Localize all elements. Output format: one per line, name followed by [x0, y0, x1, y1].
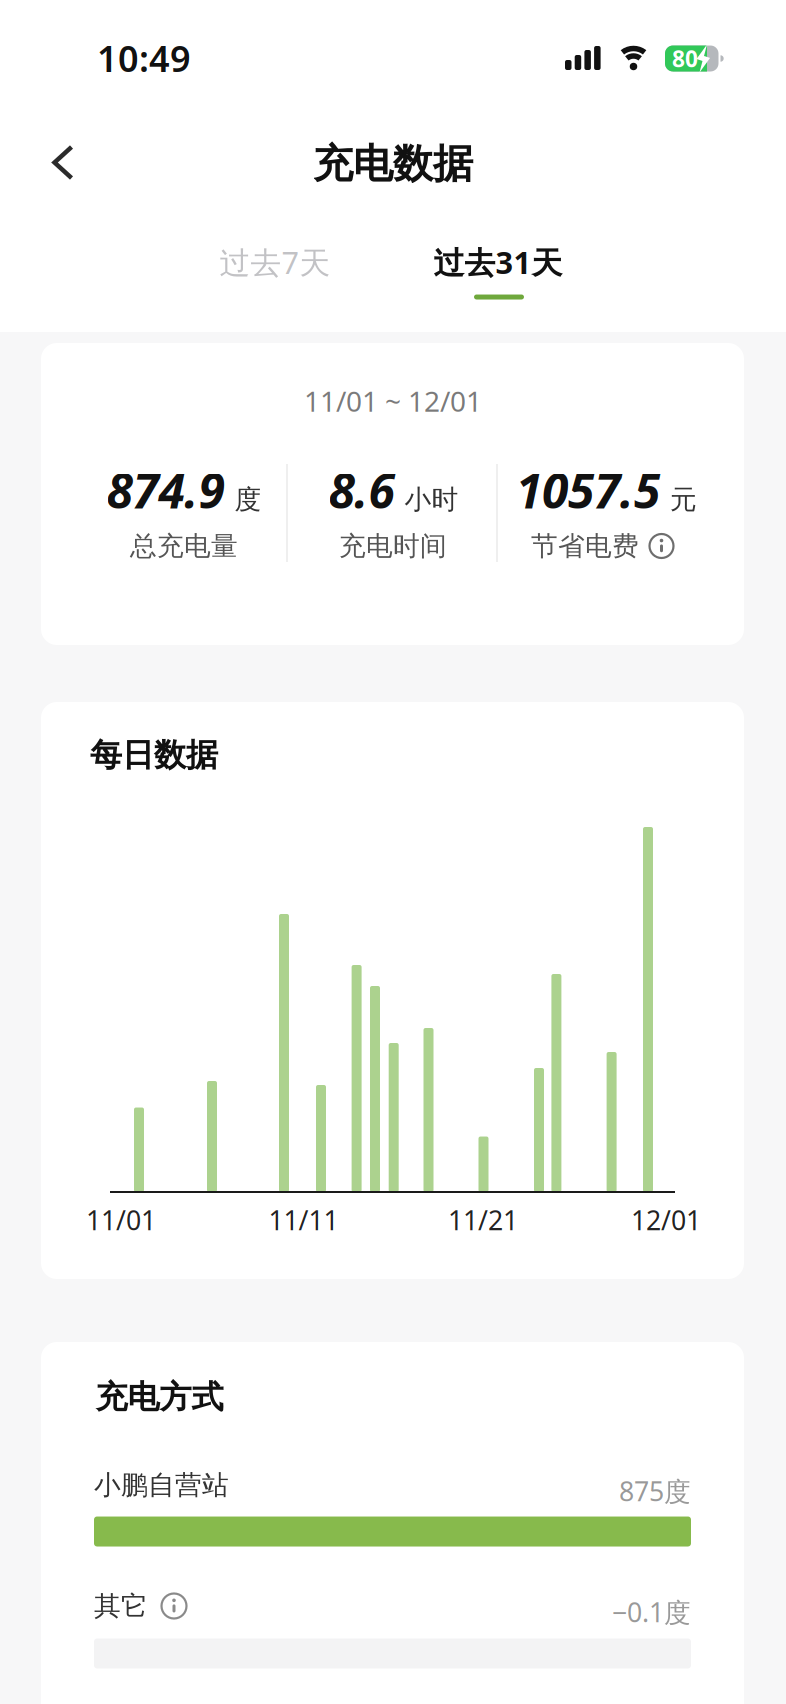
staticText: 11/11: [268, 1202, 338, 1238]
staticText: 1057.5: [516, 458, 660, 522]
button[interactable]: 过去31天: [433, 242, 562, 282]
staticText: −0.1度: [612, 1594, 691, 1630]
staticText: 每日数据: [90, 735, 218, 775]
staticText: 节省电费: [531, 530, 639, 562]
staticText: 总充电量: [130, 530, 238, 562]
staticText: 充电方式: [95, 1377, 223, 1417]
staticText: 80: [672, 43, 698, 73]
staticText: 874.9: [106, 458, 224, 522]
staticText: 度: [234, 483, 261, 516]
button[interactable]: 节省电费说明: [648, 532, 675, 559]
staticText: 充电时间: [339, 530, 447, 562]
staticText: 12/01: [631, 1202, 701, 1238]
staticText: 11/01: [86, 1202, 156, 1238]
staticText: 元: [670, 483, 697, 516]
staticText: 过去31天: [433, 242, 562, 282]
staticText: 11/01 ~ 12/01: [304, 382, 482, 420]
staticText: 充电数据: [313, 139, 473, 188]
staticText: 11/21: [448, 1202, 518, 1238]
staticText: 10:49: [97, 34, 191, 82]
staticText: 8.6: [328, 458, 394, 522]
staticText: 小时: [404, 483, 458, 516]
button[interactable]: 其它说明: [160, 1592, 188, 1620]
button[interactable]: 过去7天: [219, 242, 330, 282]
staticText: 过去7天: [219, 242, 330, 282]
staticText: 875度: [619, 1473, 691, 1509]
staticText: 其它: [94, 1590, 148, 1622]
staticText: 小鹏自营站: [94, 1469, 229, 1501]
button[interactable]: Back: [41, 140, 85, 184]
